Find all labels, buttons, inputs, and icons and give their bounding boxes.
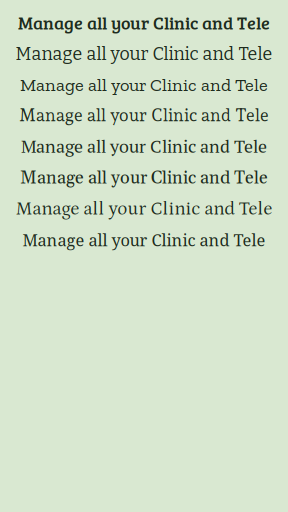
staticText: Manage all your Clinic and Tele (18, 10, 270, 34)
staticText: Manage all your Clinic and Tele (21, 134, 267, 158)
staticText: Manage all your Clinic and Tele (19, 105, 269, 125)
staticText: Manage all your Clinic and Tele (15, 199, 272, 220)
staticText: Manage all your Clinic and Tele (20, 167, 268, 190)
staticText: Manage all your Clinic and Tele (22, 229, 265, 251)
staticText: Manage all your Clinic and Tele (20, 74, 268, 96)
staticText: Manage all your Clinic and Tele (15, 43, 272, 65)
